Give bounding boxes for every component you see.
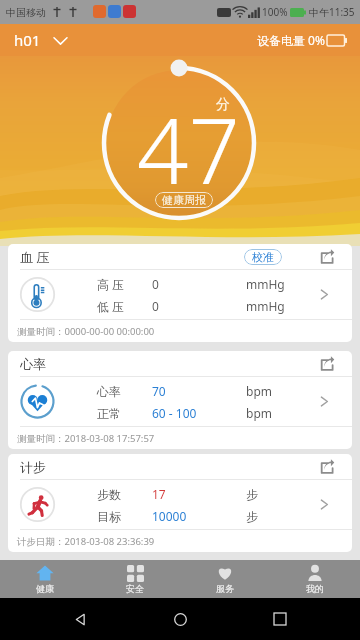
staticText: 心率 <box>97 384 121 399</box>
staticText: 健康周报 <box>162 193 206 207</box>
staticText: 血 压 <box>20 248 50 266</box>
staticText: 服务 <box>216 583 234 594</box>
staticText: 健康 <box>36 583 54 594</box>
button[interactable]: 我的 <box>270 560 360 598</box>
button[interactable]: Share <box>320 460 334 474</box>
staticText: 安全 <box>126 583 144 594</box>
staticText: 分 <box>216 96 230 114</box>
button[interactable]: 校准 <box>244 249 282 265</box>
button[interactable]: 安全 <box>90 560 180 598</box>
staticText: 0 <box>152 276 159 292</box>
button[interactable]: Share <box>320 250 334 264</box>
staticText: 60 - 100 <box>152 405 197 421</box>
staticText: 计步日期：2018-03-08 23:36:39 <box>17 535 155 548</box>
button[interactable]: 健康周报 <box>155 192 213 208</box>
staticText: 步 <box>246 487 258 502</box>
button[interactable]: 健康 <box>0 560 90 598</box>
button[interactable]: Home <box>160 599 200 639</box>
staticText: 高 压 <box>97 276 125 292</box>
staticText: 计步 <box>20 459 46 475</box>
staticText: 步数 <box>97 487 121 502</box>
staticText: mmHg <box>246 298 285 314</box>
staticText: 我的 <box>306 583 324 594</box>
staticText: 10000 <box>152 508 187 524</box>
button[interactable]: Share <box>320 357 334 371</box>
button[interactable]: h01 <box>14 30 67 50</box>
staticText: 校准 <box>252 250 274 264</box>
staticText: 47 <box>137 88 240 211</box>
staticText: 70 <box>152 383 166 399</box>
staticText: 0 <box>152 298 159 314</box>
staticText: 心率 <box>20 356 46 372</box>
staticText: 测量时间：2018-03-08 17:57:57 <box>17 432 155 445</box>
staticText: 测量时间：0000-00-00 00:00:00 <box>17 325 155 338</box>
staticText: h01 <box>14 30 41 50</box>
button[interactable]: 血 压 <box>8 244 352 342</box>
staticText: 100% <box>262 5 288 19</box>
staticText: 正常 <box>97 406 121 421</box>
button[interactable]: Recents <box>260 599 300 639</box>
staticText: 步 <box>246 509 258 524</box>
button[interactable]: 服务 <box>180 560 270 598</box>
button[interactable]: 心率 <box>8 351 352 449</box>
staticText: 中国移动 <box>6 6 46 19</box>
staticText: 低 压 <box>97 298 125 314</box>
button[interactable]: Back <box>60 599 100 639</box>
staticText: 设备电量 0% <box>257 32 325 48</box>
staticText: bpm <box>246 405 272 421</box>
staticText: bpm <box>246 383 272 399</box>
staticText: 中午11:35 <box>309 5 355 19</box>
staticText: 目标 <box>97 509 121 524</box>
button[interactable]: 计步 <box>8 454 352 552</box>
staticText: mmHg <box>246 276 285 292</box>
staticText: 17 <box>152 486 166 502</box>
